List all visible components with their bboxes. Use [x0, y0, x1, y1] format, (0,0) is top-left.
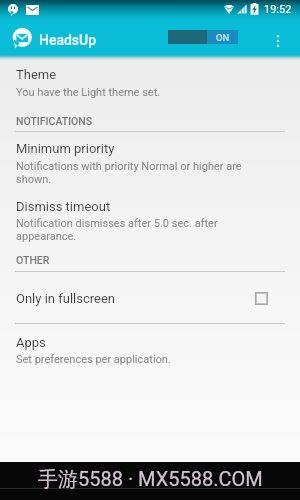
staticText: Minimum priority: [16, 141, 115, 156]
button[interactable]: [0, 194, 300, 246]
button[interactable]: [0, 136, 300, 188]
button[interactable]: [0, 282, 300, 322]
other: Only in fullscreen checkbox: [255, 292, 268, 305]
button[interactable]: [0, 330, 300, 370]
staticText: ON: [216, 32, 230, 43]
button[interactable]: [0, 60, 300, 92]
staticText: 手游5588 · MX5588.COM: [38, 467, 263, 492]
button[interactable]: More options: [266, 21, 290, 60]
staticText: Apps: [16, 335, 46, 350]
staticText: 19:52: [264, 3, 292, 16]
other: HeadsUp: [12, 27, 32, 49]
staticText: Only in fullscreen: [16, 291, 115, 306]
staticText: Notifications with priority Normal or hi…: [16, 160, 242, 173]
staticText: Theme: [16, 67, 57, 82]
staticText: Notification dismisses after 5.0 sec. af…: [16, 217, 218, 230]
staticText: NOTIFICATIONS: [16, 115, 93, 127]
staticText: HeadsUp: [39, 32, 97, 48]
staticText: OTHER: [16, 254, 50, 266]
button[interactable]: HeadsUp enabled: [168, 30, 238, 44]
staticText: shown.: [16, 173, 52, 186]
staticText: appearance.: [16, 230, 77, 243]
staticText: Dismiss timeout: [16, 199, 111, 214]
staticText: You have the Light theme set.: [16, 86, 161, 99]
button[interactable]: [0, 60, 300, 93]
staticText: Set preferences per application.: [16, 353, 171, 366]
